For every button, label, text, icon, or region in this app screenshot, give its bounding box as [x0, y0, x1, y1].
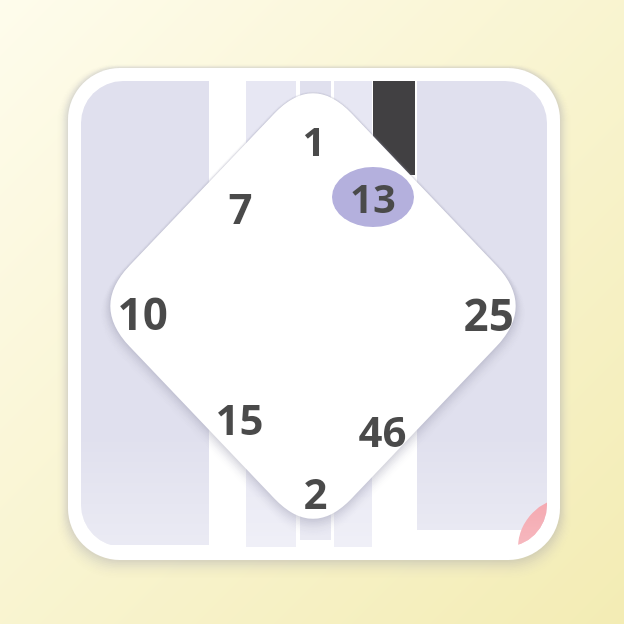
button[interactable]: Number diamond tile — [0, 0, 624, 624]
